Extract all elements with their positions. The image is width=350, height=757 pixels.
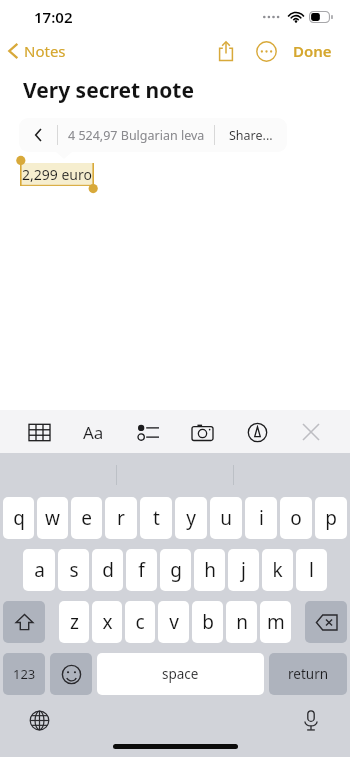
button[interactable]: r [105,497,137,539]
staticText: m [267,609,285,635]
staticText: v [169,609,179,635]
staticText: 123 [13,665,36,683]
staticText: space [162,665,199,683]
button[interactable]: 123 [3,653,45,695]
button[interactable]: Delete [305,601,347,643]
staticText: k [272,557,283,583]
button[interactable]: Camera [185,415,219,449]
button[interactable]: y [175,497,207,539]
button[interactable]: Text format [76,415,110,449]
button[interactable]: i [245,497,277,539]
staticText: q [13,505,25,531]
staticText: Done [293,41,332,61]
button[interactable]: o [280,497,312,539]
button[interactable]: Done [287,37,338,65]
button[interactable]: f [126,549,157,591]
button[interactable]: l [296,549,327,591]
staticText: w [45,505,60,531]
button[interactable]: 4 524,97 Bulgarian leva [58,118,214,152]
button[interactable]: n [226,601,257,643]
staticText: 17:02 [34,7,73,27]
button[interactable]: Checklist [131,415,165,449]
button[interactable]: z [59,601,89,643]
staticText: r [117,505,125,531]
staticText: n [236,609,248,635]
button[interactable]: 2,299 euro [22,165,92,184]
button[interactable]: Shift [3,601,45,643]
staticText: f [138,557,145,583]
staticText: l [309,557,314,583]
button[interactable]: c [125,601,155,643]
button[interactable]: Share [211,36,241,66]
staticText: j [241,557,246,583]
button[interactable]: m [260,601,291,643]
button[interactable]: a [23,549,55,591]
staticText: Notes [24,41,66,61]
button[interactable]: Switch keyboard [24,705,54,735]
staticText: b [202,609,214,635]
button[interactable]: Notes [0,37,74,65]
button[interactable]: Back [19,118,57,152]
staticText: x [102,609,113,635]
button[interactable]: Close keyboard [294,415,328,449]
staticText: Aa [83,421,104,444]
button[interactable]: h [194,549,225,591]
staticText: z [70,609,79,635]
staticText: return [288,665,329,683]
button[interactable]: Share... [215,118,287,152]
button[interactable]: Markup [240,415,274,449]
staticText: 2,299 euro [22,165,92,184]
staticText: p [325,505,337,531]
button[interactable]: More options [251,36,281,66]
button[interactable]: j [228,549,259,591]
staticText: e [81,505,92,531]
button[interactable]: q [3,497,34,539]
button[interactable]: Dictation [296,705,326,735]
button[interactable]: p [315,497,347,539]
staticText: o [290,505,302,531]
button[interactable]: g [160,549,191,591]
staticText: a [34,557,45,583]
staticText: 4 524,97 Bulgarian leva [68,127,205,144]
button[interactable]: space [97,653,264,695]
staticText: g [170,557,182,583]
button[interactable]: v [158,601,189,643]
staticText: d [102,557,114,583]
button[interactable]: k [262,549,293,591]
staticText: i [259,505,264,531]
button[interactable]: return [269,653,347,695]
button[interactable]: e [71,497,102,539]
button[interactable]: b [192,601,223,643]
button[interactable]: Emoji [50,653,92,695]
button[interactable]: x [92,601,122,643]
staticText: Very secret note [23,76,195,105]
staticText: y [186,505,196,531]
staticText: Share... [229,127,273,144]
button[interactable]: u [210,497,242,539]
button[interactable]: Table [22,415,56,449]
button[interactable]: s [58,549,89,591]
staticText: u [220,505,232,531]
button[interactable]: d [92,549,123,591]
staticText: c [135,609,145,635]
button[interactable]: t [140,497,172,539]
staticText: t [153,505,160,531]
staticText: s [69,557,79,583]
button[interactable]: w [37,497,68,539]
staticText: h [204,557,216,583]
